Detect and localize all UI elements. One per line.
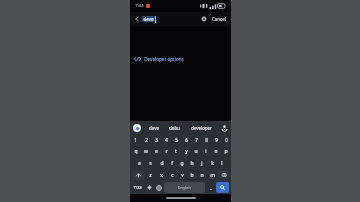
staticText: Developer options xyxy=(144,56,184,62)
button[interactable]: 5 xyxy=(171,134,181,145)
button[interactable]: w xyxy=(141,145,151,157)
staticText: 9 xyxy=(215,137,218,143)
staticText: p xyxy=(224,148,228,155)
staticText: deve xyxy=(149,125,159,131)
button[interactable]: a xyxy=(134,157,145,169)
button[interactable]: x xyxy=(156,169,167,181)
staticText: o xyxy=(214,148,218,155)
button[interactable]: r xyxy=(161,145,171,157)
button[interactable]: z xyxy=(145,169,156,181)
staticText: 4 xyxy=(165,137,168,143)
staticText: 6 xyxy=(185,137,188,143)
button[interactable]: . xyxy=(207,182,214,193)
staticText: ?123 xyxy=(133,185,142,190)
button[interactable]: g xyxy=(177,157,187,169)
button[interactable]: 7 xyxy=(191,134,201,145)
button[interactable]: debu xyxy=(167,125,182,131)
staticText: j xyxy=(201,160,203,167)
button[interactable]: c xyxy=(167,169,177,181)
button[interactable]: m xyxy=(207,169,217,181)
button[interactable]: ?123 xyxy=(132,182,143,193)
staticText: 5 xyxy=(175,137,178,143)
button[interactable]: s xyxy=(145,157,156,169)
button[interactable]: Shift xyxy=(132,170,144,180)
staticText: y xyxy=(185,148,188,155)
staticText: t xyxy=(175,148,177,155)
button[interactable]: Change keyboard language xyxy=(155,182,162,193)
button[interactable]: 0 xyxy=(221,134,231,145)
staticText: deve xyxy=(143,16,154,22)
button[interactable]: English xyxy=(164,182,205,193)
button[interactable]: Voice input xyxy=(221,124,228,131)
button[interactable]: 9 xyxy=(211,134,221,145)
button[interactable]: 4 xyxy=(161,134,171,145)
button[interactable]: Emoji xyxy=(145,182,153,193)
button[interactable]: k xyxy=(207,157,217,169)
staticText: c xyxy=(171,172,174,179)
button[interactable]: Developer options xyxy=(130,53,231,65)
staticText: e xyxy=(155,148,158,155)
staticText: z xyxy=(149,172,152,179)
button[interactable]: b xyxy=(187,169,197,181)
staticText: s xyxy=(149,160,152,167)
staticText: u xyxy=(194,148,198,155)
staticText: v xyxy=(181,172,184,179)
button[interactable]: p xyxy=(221,145,231,157)
staticText: Cancel xyxy=(212,16,226,22)
button[interactable]: h xyxy=(187,157,197,169)
button[interactable]: y xyxy=(181,145,191,157)
staticText: w xyxy=(144,148,148,155)
button[interactable]: 8 xyxy=(201,134,211,145)
button[interactable]: e xyxy=(151,145,161,157)
button[interactable]: Google xyxy=(133,124,141,132)
staticText: 8 xyxy=(205,137,208,143)
staticText: h xyxy=(190,160,194,167)
button[interactable]: Back xyxy=(134,16,140,22)
staticText: 1 xyxy=(134,137,137,143)
staticText: r xyxy=(165,148,168,155)
staticText: m xyxy=(210,172,215,179)
button[interactable]: l xyxy=(217,157,227,169)
staticText: 7 xyxy=(195,137,198,143)
staticText: l xyxy=(221,160,223,167)
button[interactable]: d xyxy=(156,157,167,169)
button[interactable]: j xyxy=(197,157,207,169)
staticText: b xyxy=(190,172,194,179)
staticText: i xyxy=(205,148,207,155)
staticText: d xyxy=(160,160,164,167)
staticText: g xyxy=(180,160,184,167)
staticText: x xyxy=(160,172,163,179)
staticText: 7:44 xyxy=(135,3,144,9)
button[interactable]: Backspace xyxy=(218,170,229,180)
staticText: f xyxy=(171,160,173,167)
staticText: 2 xyxy=(145,137,148,143)
button[interactable]: Search xyxy=(216,182,229,193)
staticText: k xyxy=(211,160,214,167)
staticText: debu xyxy=(169,125,180,131)
button[interactable]: f xyxy=(167,157,177,169)
staticText: a xyxy=(138,160,141,167)
staticText: 3 xyxy=(155,137,158,143)
button[interactable]: 6 xyxy=(181,134,191,145)
button[interactable]: Clear text xyxy=(201,16,207,22)
staticText: English xyxy=(178,185,191,190)
button[interactable]: Cancel xyxy=(211,16,227,22)
button[interactable]: n xyxy=(197,169,207,181)
button[interactable]: 2 xyxy=(141,134,151,145)
button[interactable]: t xyxy=(171,145,181,157)
button[interactable]: 1 xyxy=(130,134,141,145)
button[interactable]: v xyxy=(177,169,187,181)
staticText: 0 xyxy=(225,137,228,143)
button[interactable]: deve xyxy=(147,125,161,131)
staticText: . xyxy=(210,185,212,191)
staticText: developer xyxy=(191,125,212,131)
button[interactable]: o xyxy=(211,145,221,157)
button[interactable]: developer xyxy=(189,125,214,131)
button[interactable]: i xyxy=(201,145,211,157)
button[interactable]: q xyxy=(130,145,141,157)
button[interactable]: deve xyxy=(143,16,154,22)
staticText: q xyxy=(134,148,138,155)
button[interactable]: 3 xyxy=(151,134,161,145)
staticText: n xyxy=(200,172,204,179)
button[interactable]: u xyxy=(191,145,201,157)
